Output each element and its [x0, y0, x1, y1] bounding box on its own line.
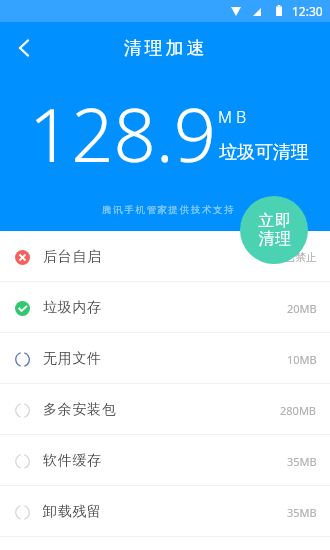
- staticText: 无用文件: [43, 350, 102, 368]
- staticText: 卸载残留: [43, 503, 102, 521]
- staticText: 已禁止: [284, 250, 317, 264]
- staticText: 垃圾内存: [43, 299, 102, 317]
- staticText: 清理加速: [124, 37, 208, 60]
- staticText: 软件缓存: [43, 452, 102, 470]
- button[interactable]: 后台自启: [0, 231, 330, 281]
- button[interactable]: 软件缓存: [0, 435, 330, 485]
- button[interactable]: 无用文件: [0, 333, 330, 383]
- staticText: 10MB: [287, 352, 317, 367]
- staticText: 多余安装包: [43, 401, 117, 419]
- staticText: MB: [218, 106, 251, 128]
- button[interactable]: 多余安装包: [0, 384, 330, 434]
- staticText: 20MB: [287, 301, 317, 316]
- button[interactable]: 立即 清理: [240, 196, 308, 264]
- button[interactable]: 垃圾内存: [0, 282, 330, 332]
- staticText: 35MB: [287, 454, 317, 469]
- staticText: 腾讯手机管家提供技术支持: [102, 204, 236, 216]
- staticText: 280MB: [280, 403, 317, 418]
- staticText: 12:30: [292, 3, 323, 19]
- button[interactable]: Back: [4, 28, 44, 68]
- button[interactable]: 卸载残留: [0, 486, 330, 536]
- staticText: 垃圾可清理: [219, 141, 309, 164]
- staticText: 35MB: [287, 505, 317, 520]
- staticText: 后台自启: [43, 248, 102, 266]
- staticText: 128.9: [29, 83, 217, 184]
- staticText: 立即 清理: [258, 211, 292, 249]
